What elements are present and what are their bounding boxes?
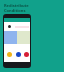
staticText: Conditions [4, 8, 26, 13]
staticText: Redistribute [4, 3, 29, 8]
